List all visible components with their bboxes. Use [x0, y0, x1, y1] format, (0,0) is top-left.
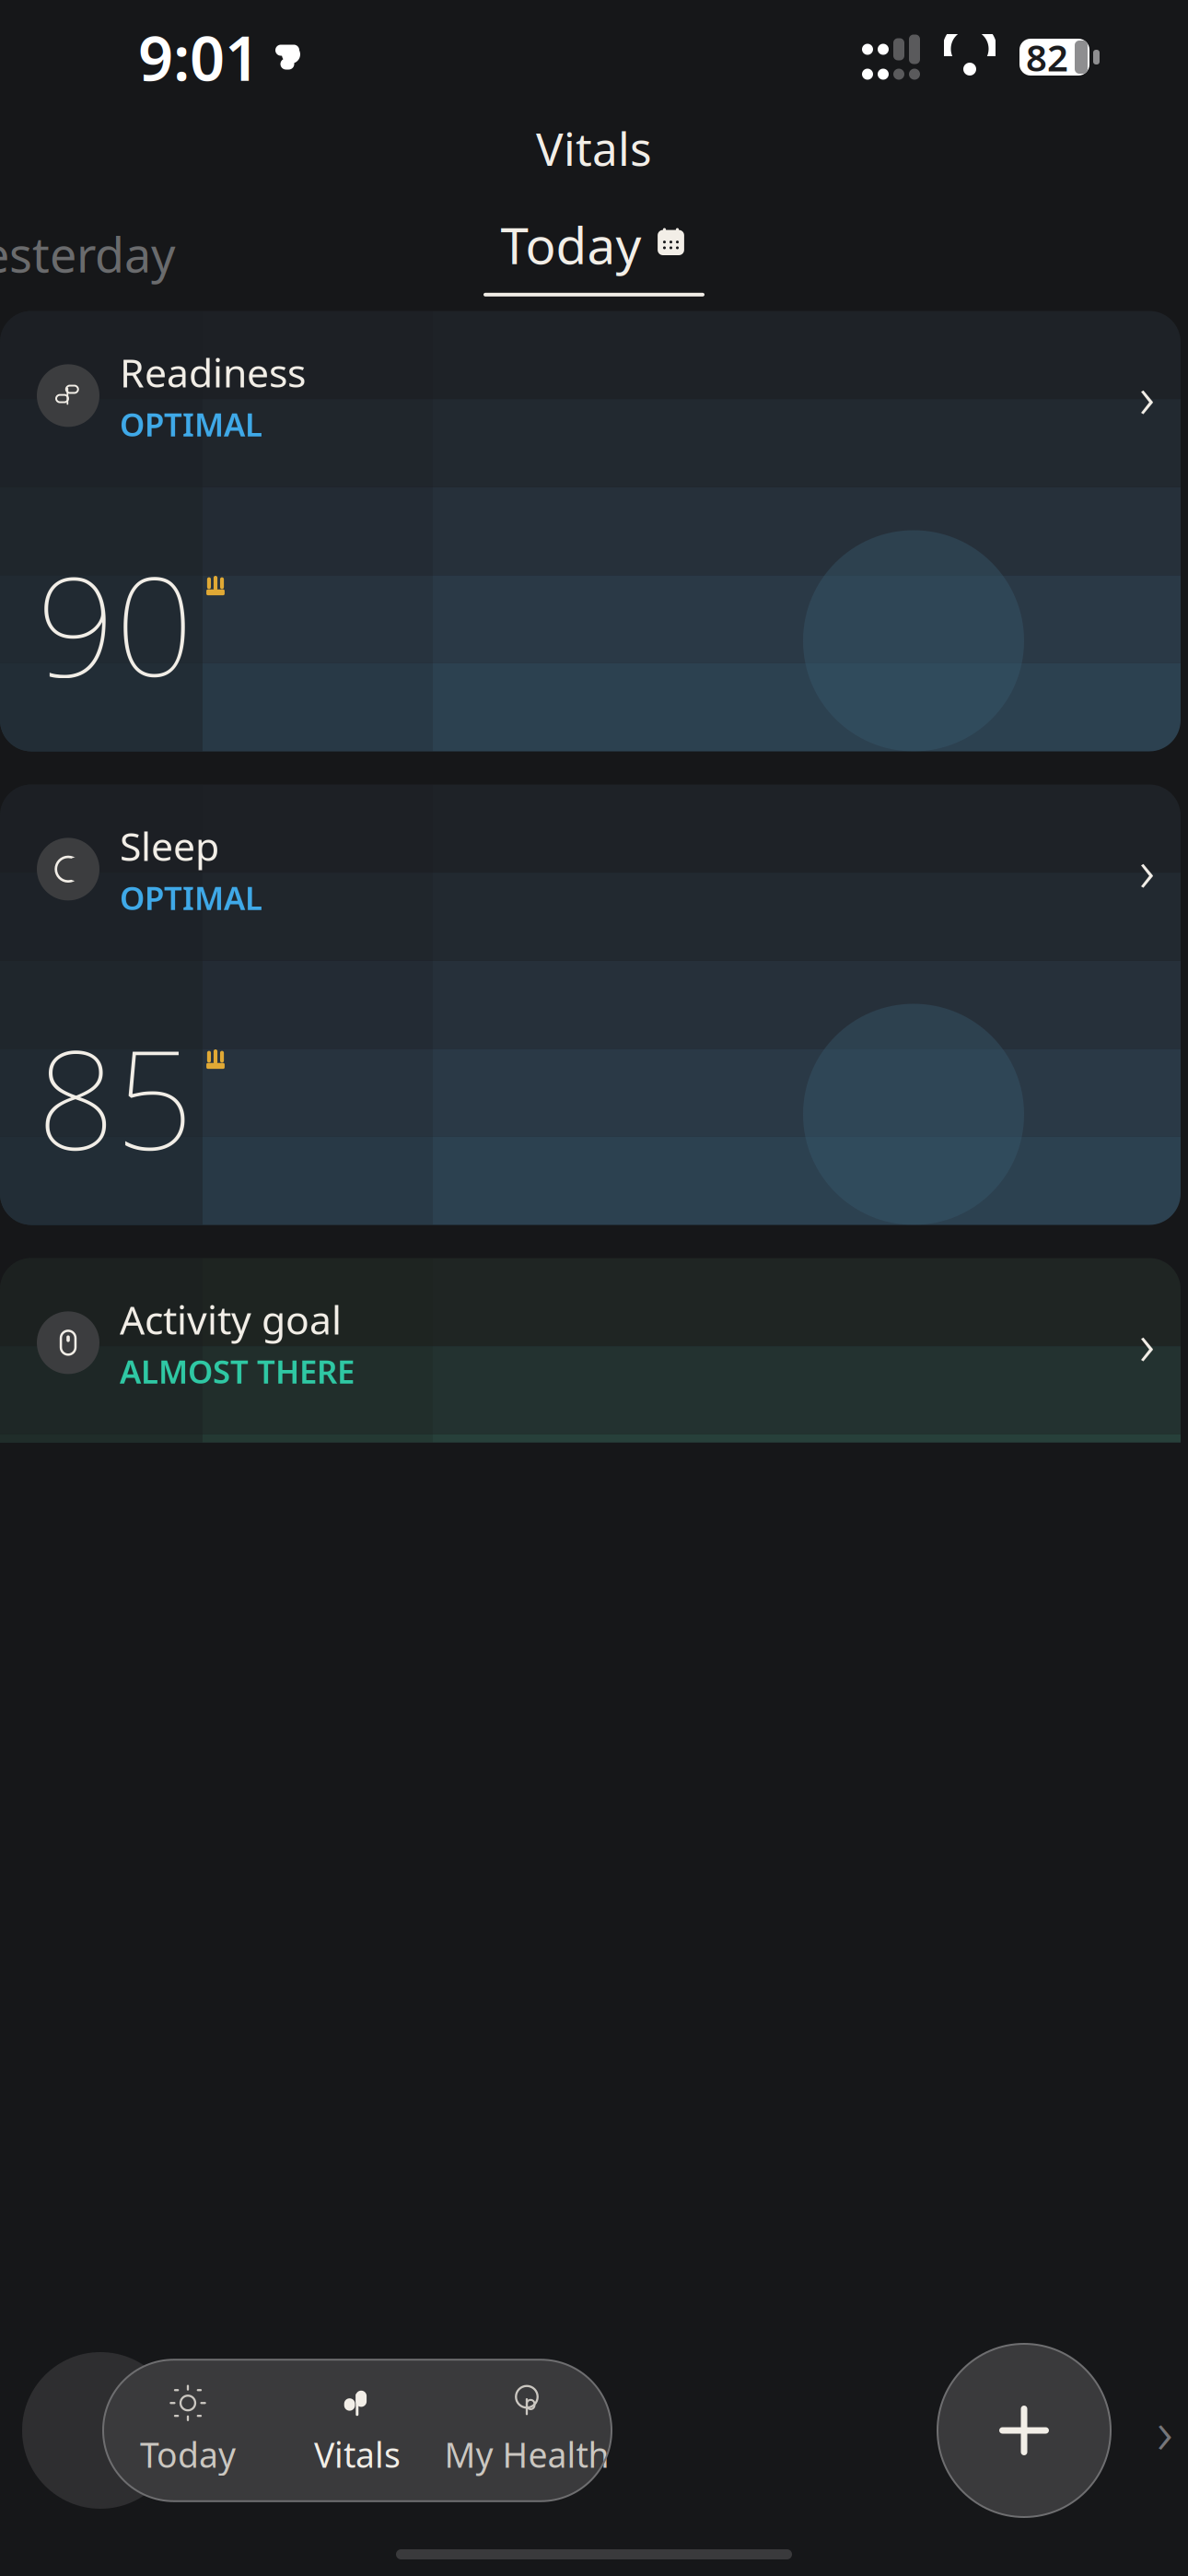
staticText: ›: [1139, 1304, 1155, 1382]
staticText: 90: [37, 532, 193, 714]
staticText: Sleep: [120, 820, 219, 872]
staticText: Today: [140, 2432, 236, 2477]
staticText: Today: [501, 211, 641, 278]
staticText: OPTIMAL: [120, 403, 262, 445]
button[interactable]: My Health: [442, 2360, 611, 2501]
staticText: Activity goal: [120, 1293, 342, 1345]
staticText: ›: [1157, 2390, 1173, 2471]
staticText: Vitals: [314, 2432, 401, 2477]
button[interactable]: Activity goal: [0, 1258, 1181, 1698]
button[interactable]: Add: [938, 2344, 1111, 2517]
button[interactable]: Today: [103, 2360, 273, 2501]
staticText: My Health: [444, 2432, 609, 2477]
staticText: ALMOST THERE: [120, 1350, 355, 1392]
staticText: ›: [1139, 830, 1155, 908]
staticText: OPTIMAL: [120, 876, 262, 919]
staticText: ›: [1139, 356, 1155, 435]
staticText: Vitals: [536, 118, 652, 178]
staticText: 82: [1026, 33, 1068, 82]
button[interactable]: Today: [501, 211, 687, 278]
button[interactable]: Yesterday: [0, 222, 176, 286]
button[interactable]: Sleep: [0, 785, 1181, 1225]
staticText: Readiness: [120, 346, 306, 398]
button[interactable]: Readiness: [0, 311, 1181, 751]
button[interactable]: Vitals: [273, 2360, 442, 2501]
staticText: 9:01: [138, 16, 260, 98]
staticText: Yesterday: [0, 222, 176, 286]
staticText: 85: [37, 1005, 193, 1188]
